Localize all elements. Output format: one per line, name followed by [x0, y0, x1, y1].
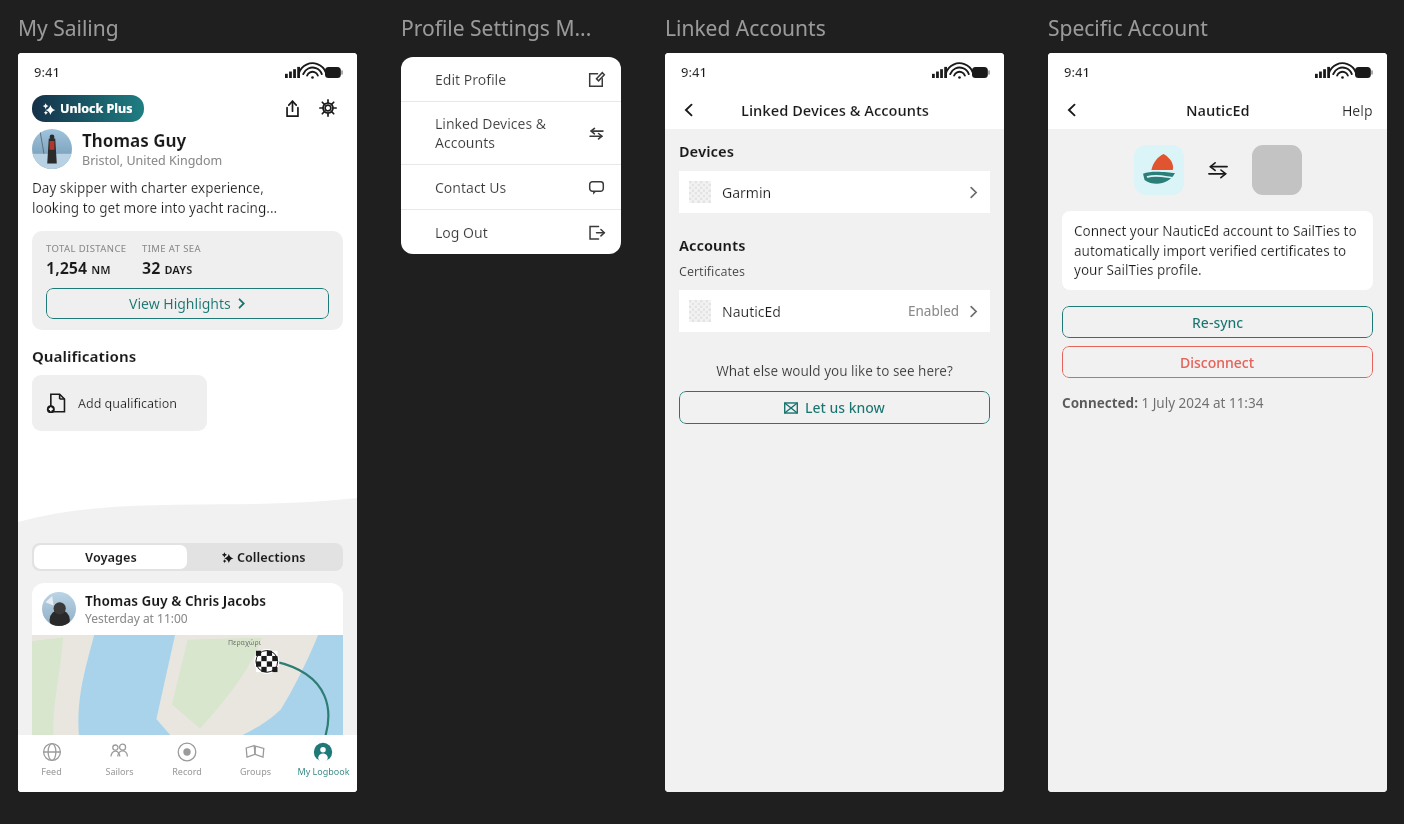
- staticText: TIME AT SEA: [142, 242, 201, 255]
- staticText: View Highlights: [129, 294, 231, 313]
- button[interactable]: NauticEd: [679, 290, 990, 332]
- button[interactable]: Share: [277, 93, 307, 123]
- staticText: 1,254 NM: [46, 257, 111, 279]
- staticText: TOTAL DISTANCE: [46, 242, 127, 255]
- staticText: What else would you like to see here?: [665, 362, 1004, 380]
- button[interactable]: View Highlights: [46, 288, 329, 319]
- staticText: Garmin: [722, 183, 772, 202]
- staticText: Specific Account: [1048, 14, 1208, 43]
- button[interactable]: Help: [1338, 95, 1377, 126]
- staticText: Certificates: [679, 263, 745, 280]
- button[interactable]: Back: [673, 94, 705, 126]
- staticText: 9:41: [34, 63, 60, 81]
- button[interactable]: Feed: [18, 735, 85, 792]
- button[interactable]: Groups: [221, 735, 289, 792]
- staticText: Record: [172, 765, 202, 777]
- staticText: Linked Accounts: [665, 14, 826, 43]
- staticText: Groups: [240, 765, 271, 777]
- staticText: Let us know: [805, 398, 885, 417]
- staticText: 9:41: [1064, 63, 1090, 81]
- staticText: Profile Settings M...: [401, 14, 592, 43]
- staticText: Re-sync: [1192, 313, 1244, 332]
- button[interactable]: Thomas Guy & Chris Jacobs: [32, 583, 343, 755]
- button[interactable]: Log Out: [401, 210, 621, 254]
- staticText: 32 DAYS: [142, 257, 193, 279]
- staticText: Unlock Plus: [60, 100, 133, 117]
- staticText: Help: [1342, 101, 1373, 120]
- staticText: Feed: [41, 765, 62, 777]
- button[interactable]: Add qualification: [32, 375, 207, 431]
- staticText: Linked Devices & Accounts: [741, 100, 929, 120]
- staticText: Voyages: [85, 549, 137, 566]
- button[interactable]: Linked Devices & Accounts: [401, 102, 621, 164]
- staticText: My Logbook: [297, 765, 350, 777]
- staticText: NauticEd: [1186, 100, 1250, 120]
- button[interactable]: Voyages: [34, 545, 187, 569]
- staticText: Connected: 1 July 2024 at 11:34: [1062, 394, 1264, 412]
- button[interactable]: Settings: [313, 93, 343, 123]
- button[interactable]: Let us know: [679, 391, 990, 424]
- staticText: Day skipper with charter experience, loo…: [32, 179, 278, 217]
- staticText: Collections: [237, 549, 306, 566]
- staticText: Add qualification: [78, 395, 178, 412]
- button[interactable]: Collections: [187, 545, 341, 569]
- button[interactable]: Unlock Plus: [32, 95, 144, 122]
- staticText: My Sailing: [18, 14, 119, 43]
- staticText: Thomas Guy & Chris Jacobs: [85, 592, 267, 610]
- staticText: Bristol, United Kingdom: [82, 152, 223, 169]
- staticText: Thomas Guy: [82, 129, 187, 152]
- staticText: Qualifications: [32, 346, 137, 366]
- button[interactable]: Sailors: [85, 735, 153, 792]
- staticText: Log Out: [435, 223, 588, 242]
- button[interactable]: Garmin: [679, 171, 990, 213]
- staticText: 9:41: [681, 63, 707, 81]
- staticText: Contact Us: [435, 178, 588, 197]
- staticText: Edit Profile: [435, 70, 588, 89]
- button[interactable]: Re-sync: [1062, 306, 1373, 338]
- button[interactable]: My Logbook: [289, 735, 357, 792]
- button[interactable]: Back: [1056, 94, 1088, 126]
- staticText: Devices: [679, 141, 735, 161]
- staticText: Connect your NauticEd account to SailTie…: [1074, 222, 1361, 279]
- button[interactable]: Edit Profile: [401, 57, 621, 101]
- staticText: Περαχώρι: [228, 638, 261, 648]
- staticText: NauticEd: [722, 302, 781, 321]
- staticText: Enabled: [908, 302, 960, 320]
- staticText: Yesterday at 11:00: [85, 610, 188, 626]
- staticText: Linked Devices & Accounts: [435, 114, 588, 152]
- staticText: Accounts: [679, 235, 746, 255]
- button[interactable]: Disconnect: [1062, 346, 1373, 378]
- button[interactable]: Contact Us: [401, 165, 621, 209]
- button[interactable]: Record: [153, 735, 221, 792]
- staticText: Sailors: [105, 765, 134, 777]
- staticText: Disconnect: [1180, 353, 1255, 372]
